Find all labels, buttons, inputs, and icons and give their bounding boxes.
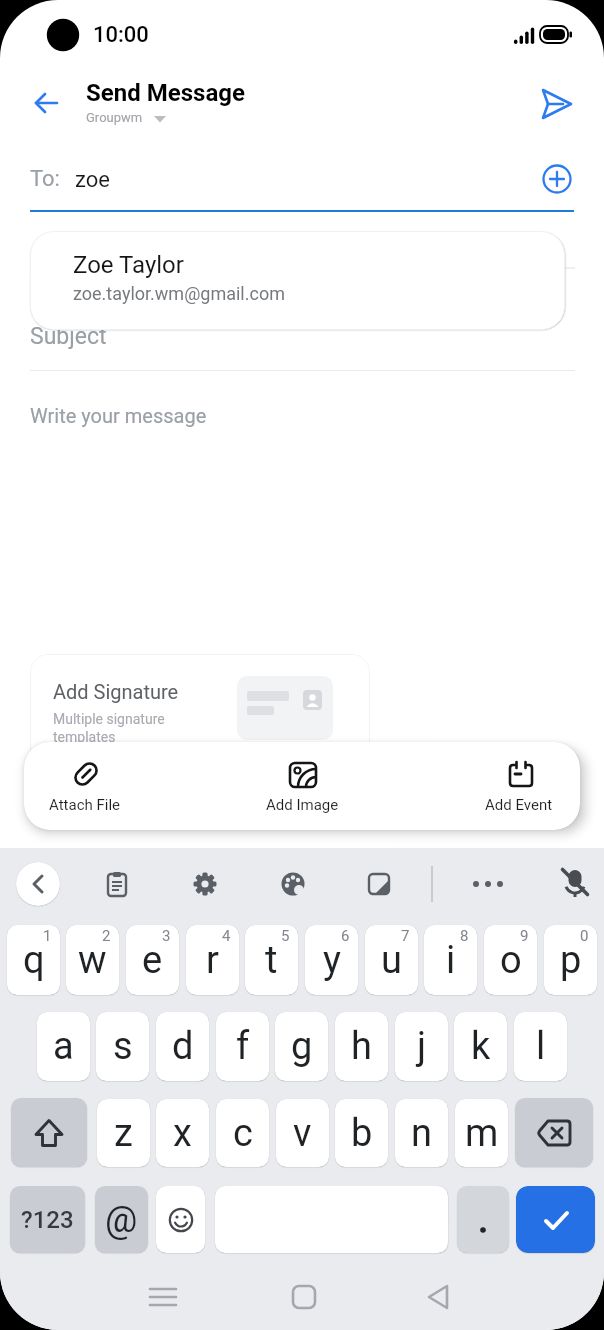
button[interactable]: t — [245, 925, 298, 995]
staticText: q — [23, 938, 45, 983]
button[interactable]: d — [156, 1012, 209, 1081]
button[interactable]: y — [305, 925, 358, 995]
button[interactable]: Add Image — [247, 748, 357, 824]
button[interactable]: ?123 — [10, 1186, 85, 1253]
staticText: b — [351, 1111, 373, 1156]
staticText: u — [381, 938, 402, 983]
button[interactable]: u — [365, 925, 418, 995]
staticText: @ — [105, 1199, 138, 1241]
button[interactable] — [24, 385, 574, 625]
staticText: s — [113, 1024, 133, 1069]
button[interactable]: g — [275, 1012, 328, 1081]
staticText: a — [53, 1024, 74, 1069]
button[interactable]: p — [544, 925, 597, 995]
button[interactable] — [192, 871, 218, 897]
staticText: Multiple signature — [53, 711, 165, 727]
button[interactable] — [516, 1186, 595, 1253]
button[interactable] — [415, 1278, 463, 1322]
button[interactable] — [11, 1098, 87, 1167]
staticText: Send Message — [86, 79, 245, 107]
button[interactable]: z — [97, 1099, 150, 1167]
button[interactable]: Add Signature — [30, 654, 370, 774]
button[interactable] — [24, 310, 574, 370]
button[interactable]: h — [335, 1012, 388, 1081]
staticText: Subject — [30, 323, 107, 350]
staticText: e — [142, 938, 163, 983]
button[interactable]: e — [126, 925, 179, 995]
button[interactable] — [24, 150, 534, 212]
button[interactable]: o — [484, 925, 537, 995]
button[interactable]: k — [454, 1012, 507, 1081]
staticText: Zoe Taylor — [73, 251, 184, 279]
staticText: i — [446, 938, 456, 983]
staticText: t — [265, 938, 278, 983]
button[interactable] — [138, 1278, 188, 1322]
staticText: 6 — [341, 927, 350, 945]
staticText: Write your message — [30, 404, 207, 427]
staticText: x — [173, 1111, 192, 1156]
button[interactable] — [515, 1098, 593, 1167]
button[interactable]: Zoe Taylor — [30, 231, 565, 330]
staticText: o — [500, 938, 522, 983]
staticText: Add Image — [266, 796, 339, 814]
staticText: d — [172, 1024, 194, 1069]
button[interactable]: m — [455, 1099, 508, 1167]
staticText: 9 — [520, 927, 529, 945]
button[interactable]: q — [7, 925, 60, 995]
staticText: w — [78, 938, 107, 983]
button[interactable] — [366, 871, 392, 897]
staticText: ?123 — [21, 1206, 74, 1234]
button[interactable]: s — [96, 1012, 149, 1081]
button[interactable]: n — [395, 1099, 448, 1167]
button[interactable] — [280, 1278, 328, 1322]
button[interactable]: @ — [95, 1186, 148, 1253]
button[interactable] — [561, 868, 589, 898]
staticText: 7 — [401, 927, 410, 945]
staticText: 0 — [580, 927, 589, 945]
staticText: 3 — [162, 927, 171, 945]
button[interactable] — [156, 1186, 205, 1253]
staticText: h — [351, 1024, 372, 1069]
staticText: y — [323, 938, 341, 983]
staticText: 5 — [281, 927, 290, 945]
staticText: 1 — [43, 927, 52, 945]
staticText: 4 — [222, 927, 231, 945]
staticText: Add Signature — [53, 680, 179, 703]
staticText: Attach File — [49, 796, 121, 814]
staticText: 8 — [460, 927, 469, 945]
button[interactable] — [280, 871, 306, 897]
button[interactable]: i — [424, 925, 477, 995]
button[interactable] — [457, 1186, 509, 1253]
button[interactable]: r — [186, 925, 239, 995]
button[interactable] — [20, 88, 64, 120]
button[interactable]: w — [66, 925, 119, 995]
button[interactable]: Add Event — [464, 748, 574, 824]
staticText: To: — [30, 166, 60, 192]
button[interactable]: b — [335, 1099, 388, 1167]
staticText: j — [417, 1024, 427, 1069]
button[interactable]: f — [216, 1012, 269, 1081]
button[interactable]: l — [514, 1012, 567, 1081]
button[interactable]: j — [395, 1012, 448, 1081]
button[interactable]: v — [276, 1099, 329, 1167]
staticText: v — [293, 1111, 312, 1156]
button[interactable]: x — [156, 1099, 209, 1167]
button[interactable] — [536, 84, 578, 124]
staticText: n — [411, 1111, 432, 1156]
button[interactable] — [16, 862, 60, 906]
staticText: g — [291, 1024, 313, 1069]
staticText: c — [233, 1111, 253, 1156]
staticText: Groupwm — [86, 110, 143, 125]
button[interactable] — [540, 162, 576, 198]
staticText: 10:00 — [93, 22, 149, 48]
button[interactable]: c — [216, 1099, 269, 1167]
button[interactable] — [104, 871, 130, 897]
button[interactable]: a — [37, 1012, 90, 1081]
button[interactable]: Attach File — [30, 748, 140, 824]
staticText: r — [206, 938, 219, 983]
staticText: zoe — [75, 167, 110, 193]
staticText: m — [465, 1111, 499, 1156]
staticText: l — [536, 1024, 546, 1069]
staticText: zoe.taylor.wm@gmail.com — [73, 283, 285, 304]
